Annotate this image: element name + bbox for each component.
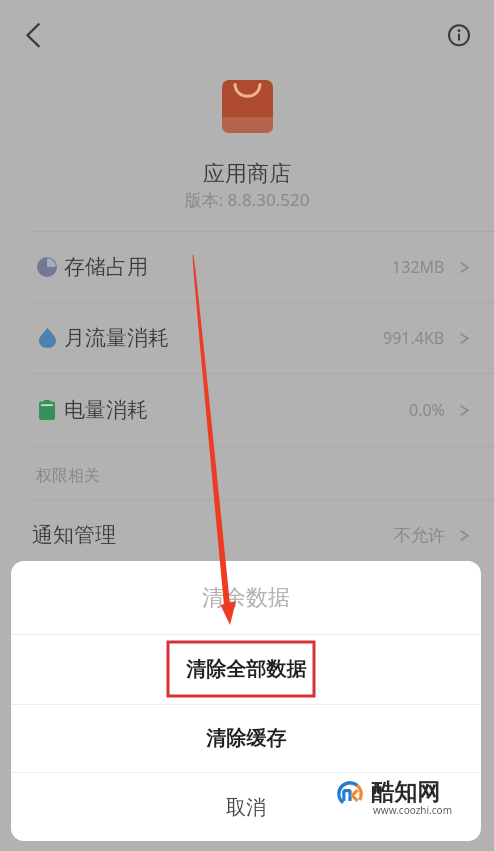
staticText: 电量消耗 (64, 397, 148, 423)
staticText: 991.4KB (383, 327, 445, 349)
button[interactable]: 通知管理 (0, 500, 494, 570)
button[interactable]: 清除缓存 (11, 705, 481, 772)
staticText: www.coozhi.com (373, 803, 452, 817)
staticText: 存储占用 (64, 254, 148, 280)
staticText: 应用商店 (0, 160, 494, 188)
staticText: 月流量消耗 (64, 325, 169, 351)
button[interactable]: App info (439, 15, 479, 55)
staticText: 版本: 8.8.30.520 (0, 188, 494, 211)
staticText: 清除缓存 (206, 726, 286, 751)
staticText: 通知管理 (32, 522, 116, 548)
staticText: 权限相关 (36, 466, 100, 486)
staticText: 不允许 (394, 525, 445, 546)
staticText: 清余数据 (202, 584, 290, 612)
staticText: 酷知网 (371, 778, 440, 807)
button[interactable]: 电量消耗 (0, 374, 494, 446)
button[interactable]: Back (14, 14, 56, 56)
button[interactable]: 存储占用 (0, 232, 494, 302)
staticText: 132MB (392, 256, 445, 278)
staticText: 0.0% (409, 399, 445, 421)
button[interactable]: 清除全部数据 (11, 635, 481, 704)
button[interactable]: 月流量消耗 (0, 303, 494, 373)
staticText: 清除全部数据 (186, 657, 306, 682)
button[interactable]: 取消 (11, 773, 481, 841)
staticText: 取消 (226, 795, 266, 820)
